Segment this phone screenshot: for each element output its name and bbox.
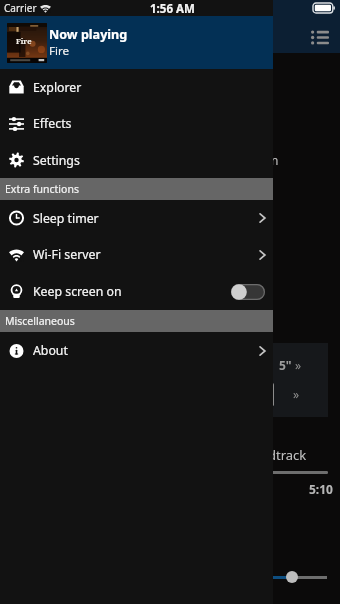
staticText: Now playing	[49, 26, 128, 43]
button[interactable]: Wi-Fi server	[0, 236, 273, 273]
button[interactable]: Keep screen on toggle	[231, 284, 265, 300]
button[interactable]: Fire	[0, 16, 273, 69]
staticText: Extra functions	[5, 182, 79, 196]
staticText: »	[293, 386, 300, 402]
button[interactable]: Effects	[0, 105, 273, 142]
staticText: dtrack	[268, 446, 307, 464]
staticText: n	[271, 152, 279, 168]
staticText: 5:10	[309, 481, 333, 497]
staticText: Carrier	[4, 1, 37, 15]
button[interactable]: Settings	[0, 142, 273, 178]
staticText: Settings	[33, 152, 80, 169]
staticText: Wi-Fi server	[33, 246, 101, 263]
button[interactable]: Playlist	[307, 24, 333, 50]
staticText: Keep screen on	[33, 283, 122, 300]
staticText: Miscellaneous	[5, 314, 75, 328]
staticText: Fire	[49, 43, 70, 59]
staticText: Explorer	[33, 79, 82, 96]
staticText: About	[33, 342, 68, 359]
staticText: 1:56 AM	[150, 1, 195, 17]
staticText: »	[295, 357, 302, 373]
button[interactable]: Volume	[286, 571, 298, 583]
staticText: Fire	[16, 36, 32, 46]
staticText: Sleep timer	[33, 210, 99, 227]
button[interactable]: About	[0, 332, 273, 369]
button[interactable]: Explorer	[0, 69, 273, 105]
staticText: 5"	[279, 357, 292, 373]
button[interactable]: Keep screen on	[0, 273, 273, 310]
button[interactable]: 5"	[279, 357, 302, 373]
staticText: Effects	[33, 115, 72, 132]
button[interactable]: Sleep timer	[0, 200, 273, 236]
